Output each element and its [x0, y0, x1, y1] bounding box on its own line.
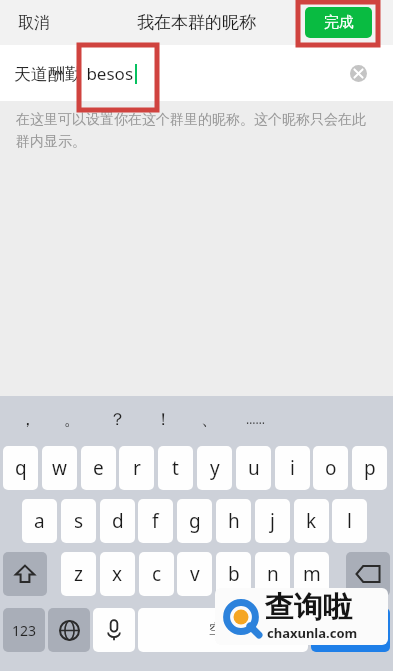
staticText: j — [270, 508, 275, 534]
button[interactable]: x — [100, 552, 135, 596]
staticText: 我在本群的昵称 — [137, 12, 256, 33]
staticText: s — [74, 508, 84, 534]
button[interactable]: v — [177, 552, 212, 596]
button[interactable]: Clear text — [350, 65, 367, 82]
staticText: 取消 — [18, 13, 50, 33]
staticText: u — [248, 455, 260, 481]
button[interactable]: ， — [10, 404, 44, 434]
button[interactable]: k — [294, 499, 329, 543]
button[interactable]: Backspace — [346, 552, 390, 596]
staticText: ？ — [109, 409, 126, 430]
button[interactable]: o — [313, 446, 348, 490]
staticText: v — [190, 561, 200, 587]
staticText: 天道酬勤 besos — [14, 62, 134, 85]
button[interactable]: z — [61, 552, 96, 596]
staticText: x — [112, 561, 123, 587]
staticText: 在这里可以设置你在这个群里的昵称。这个昵称只会在此群内显示。 — [16, 111, 377, 150]
staticText: r — [133, 455, 141, 481]
button[interactable]: t — [158, 446, 193, 490]
staticText: 。 — [64, 409, 81, 430]
staticText: g — [189, 508, 201, 534]
staticText: 空格 — [209, 621, 237, 639]
button[interactable]: p — [352, 446, 387, 490]
staticText: ！ — [155, 409, 172, 430]
staticText: 查询啦 — [265, 589, 352, 626]
button[interactable]: 空格 — [138, 608, 308, 652]
button[interactable]: Switch language — [48, 608, 90, 652]
staticText: …… — [246, 411, 265, 427]
button[interactable]: ？ — [100, 404, 134, 434]
staticText: f — [152, 508, 159, 534]
button[interactable]: Shift — [3, 552, 47, 596]
staticText: n — [267, 561, 279, 587]
staticText: t — [172, 455, 179, 481]
button[interactable]: 。 — [55, 404, 89, 434]
button[interactable]: …… — [238, 404, 272, 434]
staticText: o — [325, 455, 337, 481]
button[interactable]: m — [294, 552, 329, 596]
staticText: i — [290, 455, 295, 481]
button[interactable]: 完成 — [305, 7, 372, 38]
button[interactable]: l — [332, 499, 367, 543]
button[interactable]: a — [22, 499, 57, 543]
staticText: y — [210, 455, 220, 481]
button[interactable]: 换行 — [311, 608, 390, 652]
staticText: d — [112, 508, 124, 534]
staticText: z — [74, 561, 83, 587]
staticText: ， — [19, 409, 36, 430]
button[interactable]: 取消 — [12, 7, 56, 39]
button[interactable]: 、 — [192, 404, 226, 434]
staticText: e — [93, 455, 104, 481]
button[interactable]: Voice input — [93, 608, 135, 652]
button[interactable]: ！ — [146, 404, 180, 434]
staticText: a — [34, 508, 45, 534]
button[interactable]: b — [216, 552, 251, 596]
button[interactable]: y — [197, 446, 232, 490]
button[interactable]: j — [255, 499, 290, 543]
button[interactable]: r — [119, 446, 154, 490]
staticText: q — [15, 455, 27, 481]
button[interactable]: u — [236, 446, 271, 490]
button[interactable]: n — [255, 552, 290, 596]
button[interactable]: i — [275, 446, 310, 490]
button[interactable]: f — [138, 499, 173, 543]
staticText: l — [347, 508, 352, 534]
button[interactable]: 天道酬勤 besos — [0, 45, 393, 101]
staticText: b — [228, 561, 240, 587]
staticText: chaxunla.com — [267, 624, 358, 642]
staticText: c — [152, 561, 162, 587]
button[interactable]: w — [42, 446, 77, 490]
staticText: p — [364, 455, 376, 481]
staticText: k — [306, 508, 317, 534]
staticText: w — [52, 455, 67, 481]
staticText: m — [303, 561, 321, 587]
button[interactable]: e — [81, 446, 116, 490]
staticText: 完成 — [324, 13, 354, 32]
button[interactable]: g — [177, 499, 212, 543]
button[interactable]: h — [216, 499, 251, 543]
button[interactable]: c — [139, 552, 174, 596]
staticText: h — [228, 508, 240, 534]
button[interactable]: q — [3, 446, 38, 490]
button[interactable]: d — [100, 499, 135, 543]
staticText: 换行 — [337, 621, 365, 639]
staticText: 、 — [201, 409, 218, 430]
staticText: 123 — [12, 621, 37, 640]
button[interactable]: s — [61, 499, 96, 543]
button[interactable]: Numbers — [3, 608, 45, 652]
